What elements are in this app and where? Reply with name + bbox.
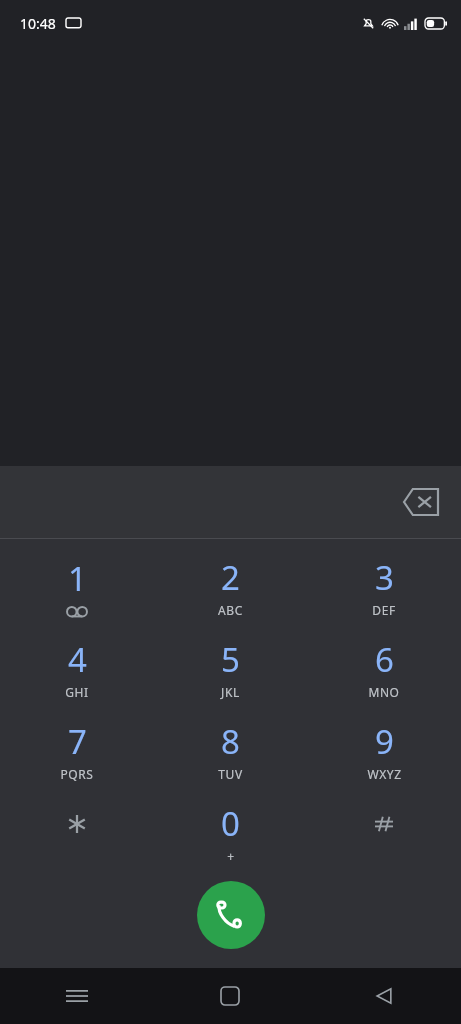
button[interactable]: 8 bbox=[153, 709, 307, 791]
button[interactable]: Backspace bbox=[393, 478, 449, 526]
staticText: 5 bbox=[221, 637, 240, 682]
button[interactable]: 0 bbox=[153, 791, 307, 873]
staticText: + bbox=[227, 848, 235, 864]
staticText: 9 bbox=[375, 719, 394, 764]
button[interactable]: 4 bbox=[0, 627, 153, 709]
staticText: PQRS bbox=[60, 766, 94, 782]
button[interactable] bbox=[0, 791, 153, 873]
staticText: 0 bbox=[221, 801, 240, 846]
button[interactable]: 6 bbox=[307, 627, 461, 709]
button[interactable]: 9 bbox=[307, 709, 461, 791]
button[interactable]: Back bbox=[307, 968, 461, 1024]
button[interactable]: Home bbox=[153, 968, 307, 1024]
staticText: 8 bbox=[221, 719, 240, 764]
button[interactable]: Call bbox=[197, 881, 265, 949]
staticText: 1 bbox=[68, 556, 87, 601]
staticText: JKL bbox=[221, 684, 240, 700]
button[interactable]: 1 bbox=[0, 545, 153, 627]
staticText: WXYZ bbox=[367, 766, 402, 782]
button[interactable]: 7 bbox=[0, 709, 153, 791]
staticText: DEF bbox=[372, 602, 396, 618]
staticText: MNO bbox=[368, 684, 400, 700]
staticText: 7 bbox=[68, 719, 87, 764]
button[interactable] bbox=[307, 791, 461, 873]
button[interactable]: Recent apps bbox=[0, 968, 153, 1024]
staticText: TUV bbox=[218, 766, 243, 782]
staticText: 10:48 bbox=[20, 14, 56, 33]
staticText: GHI bbox=[65, 684, 89, 700]
staticText: 3 bbox=[375, 555, 394, 600]
button[interactable]: 3 bbox=[307, 545, 461, 627]
staticText: 6 bbox=[375, 637, 394, 682]
button[interactable]: 2 bbox=[153, 545, 307, 627]
button[interactable]: 5 bbox=[153, 627, 307, 709]
staticText: ABC bbox=[218, 602, 243, 618]
staticText: 4 bbox=[68, 637, 87, 682]
staticText: 2 bbox=[221, 555, 240, 600]
